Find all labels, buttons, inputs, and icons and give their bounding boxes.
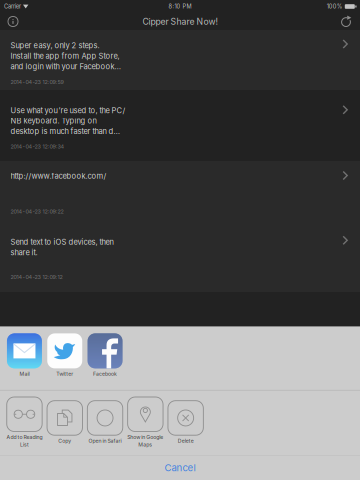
staticText: 8:10 PM (168, 3, 191, 10)
button[interactable]: Info (4, 12, 22, 30)
button[interactable]: Open in Safari (85, 401, 125, 444)
button[interactable]: Show in Google (125, 397, 165, 448)
staticText: Carrier (4, 3, 21, 10)
staticText: Send text to iOS devices, then (10, 237, 113, 247)
staticText: Maps (138, 441, 152, 448)
button[interactable]: Refresh (337, 12, 355, 30)
button[interactable]: Send text to iOS devices, then (0, 227, 360, 292)
staticText: NB keyboard. Typing on (10, 116, 96, 125)
button[interactable]: Super easy, only 2 steps. (0, 30, 360, 90)
button[interactable]: Delete (165, 401, 206, 444)
staticText: Copy (58, 438, 71, 444)
staticText: share it. (10, 248, 37, 257)
staticText: Mail (19, 371, 29, 377)
staticText: Facebook (93, 371, 117, 377)
staticText: Add to Reading (6, 434, 42, 440)
staticText: desktop is much faster than d… (10, 127, 120, 136)
button[interactable]: http://www.facebook.com/ (0, 161, 360, 227)
staticText: Cancel (164, 462, 195, 474)
staticText: 2014-04-23 12:09:59 (10, 79, 63, 85)
staticText: Delete (178, 438, 194, 444)
staticText: Open in Safari (88, 438, 121, 444)
button[interactable]: Copy (45, 401, 85, 444)
button[interactable]: Add to Reading (4, 397, 45, 448)
staticText: 2014-04-23 12:09:34 (10, 143, 64, 150)
staticText: and login with your Facebook… (10, 62, 121, 71)
button[interactable]: Cancel (0, 456, 360, 480)
staticText: Cipper Share Now! (142, 16, 217, 27)
staticText: List (20, 441, 29, 448)
button[interactable]: Use what you’re used to, the PC/ (0, 90, 360, 161)
staticText: 2014-04-23 12:09:12 (10, 274, 62, 280)
button[interactable]: Facebook (85, 333, 125, 377)
staticText: Install the app from App Store, (10, 51, 119, 61)
staticText: Twitter (56, 371, 73, 377)
staticText: http://www.facebook.com/ (10, 171, 106, 180)
button[interactable]: Mail (4, 333, 45, 377)
staticText: Show in Google (127, 434, 163, 440)
button[interactable]: Twitter (45, 333, 85, 377)
staticText: 2014-04-23 12:09:22 (10, 208, 63, 215)
staticText: Super easy, only 2 steps. (10, 41, 99, 50)
staticText: Use what you’re used to, the PC/ (10, 106, 125, 115)
staticText: 100% (327, 3, 343, 10)
